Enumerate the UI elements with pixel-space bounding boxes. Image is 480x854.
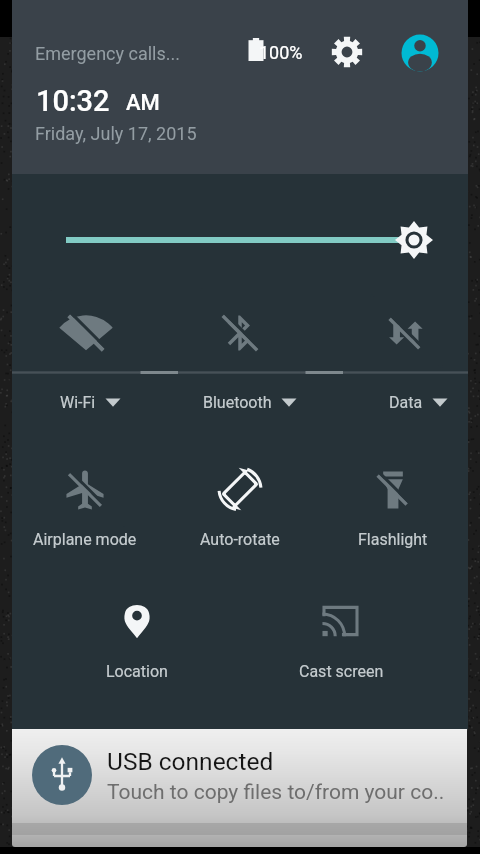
staticText: Auto-rotate (200, 530, 280, 549)
button[interactable] (316, 430, 468, 555)
button[interactable] (265, 562, 417, 687)
staticText: Flashlight (358, 530, 428, 549)
staticText: Emergency calls... (35, 43, 180, 64)
button[interactable] (164, 430, 316, 555)
staticText: 100% (259, 42, 303, 63)
button[interactable]: Wi-Fi (52, 386, 129, 418)
button[interactable]: Bluetooth (195, 386, 305, 418)
staticText: Location (106, 662, 168, 681)
staticText: Cast screen (299, 662, 384, 681)
staticText: Friday, July 17, 2015 (35, 123, 197, 144)
staticText: Airplane mode (33, 530, 137, 549)
staticText: Data (389, 393, 423, 412)
button[interactable]: Settings (323, 28, 371, 76)
staticText: USB connected (107, 747, 274, 776)
button[interactable]: User profile (396, 29, 444, 77)
button[interactable]: Brightness (12, 212, 468, 268)
staticText: Touch to copy files to/from your co.. (107, 780, 445, 805)
staticText: Bluetooth (203, 393, 272, 412)
staticText: AM (126, 90, 160, 116)
button[interactable] (12, 430, 164, 555)
staticText: 10:32 (36, 84, 110, 118)
button[interactable]: USB connected (12, 729, 467, 847)
staticText: Wi-Fi (60, 393, 96, 412)
button[interactable] (61, 562, 213, 687)
button[interactable]: Data (381, 386, 456, 418)
